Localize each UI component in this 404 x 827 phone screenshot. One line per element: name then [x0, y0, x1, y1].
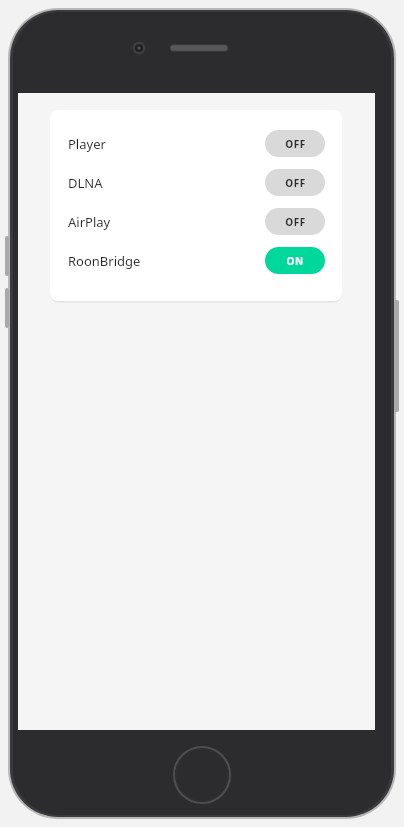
staticText: Player: [68, 135, 106, 153]
button[interactable]: DLNA: [50, 163, 342, 202]
staticText: OFF: [285, 215, 306, 229]
button[interactable]: Toggle off: [265, 130, 325, 157]
button[interactable]: Player: [50, 124, 342, 163]
staticText: OFF: [285, 176, 306, 190]
button[interactable]: Toggle on: [265, 247, 325, 274]
button[interactable]: RoonBridge: [50, 241, 342, 280]
staticText: RoonBridge: [68, 252, 141, 270]
button[interactable]: AirPlay: [50, 202, 342, 241]
button[interactable]: Toggle off: [265, 208, 325, 235]
staticText: DLNA: [68, 174, 103, 192]
staticText: ON: [286, 254, 304, 268]
staticText: AirPlay: [68, 213, 111, 231]
button[interactable]: Toggle off: [265, 169, 325, 196]
staticText: OFF: [285, 137, 306, 151]
